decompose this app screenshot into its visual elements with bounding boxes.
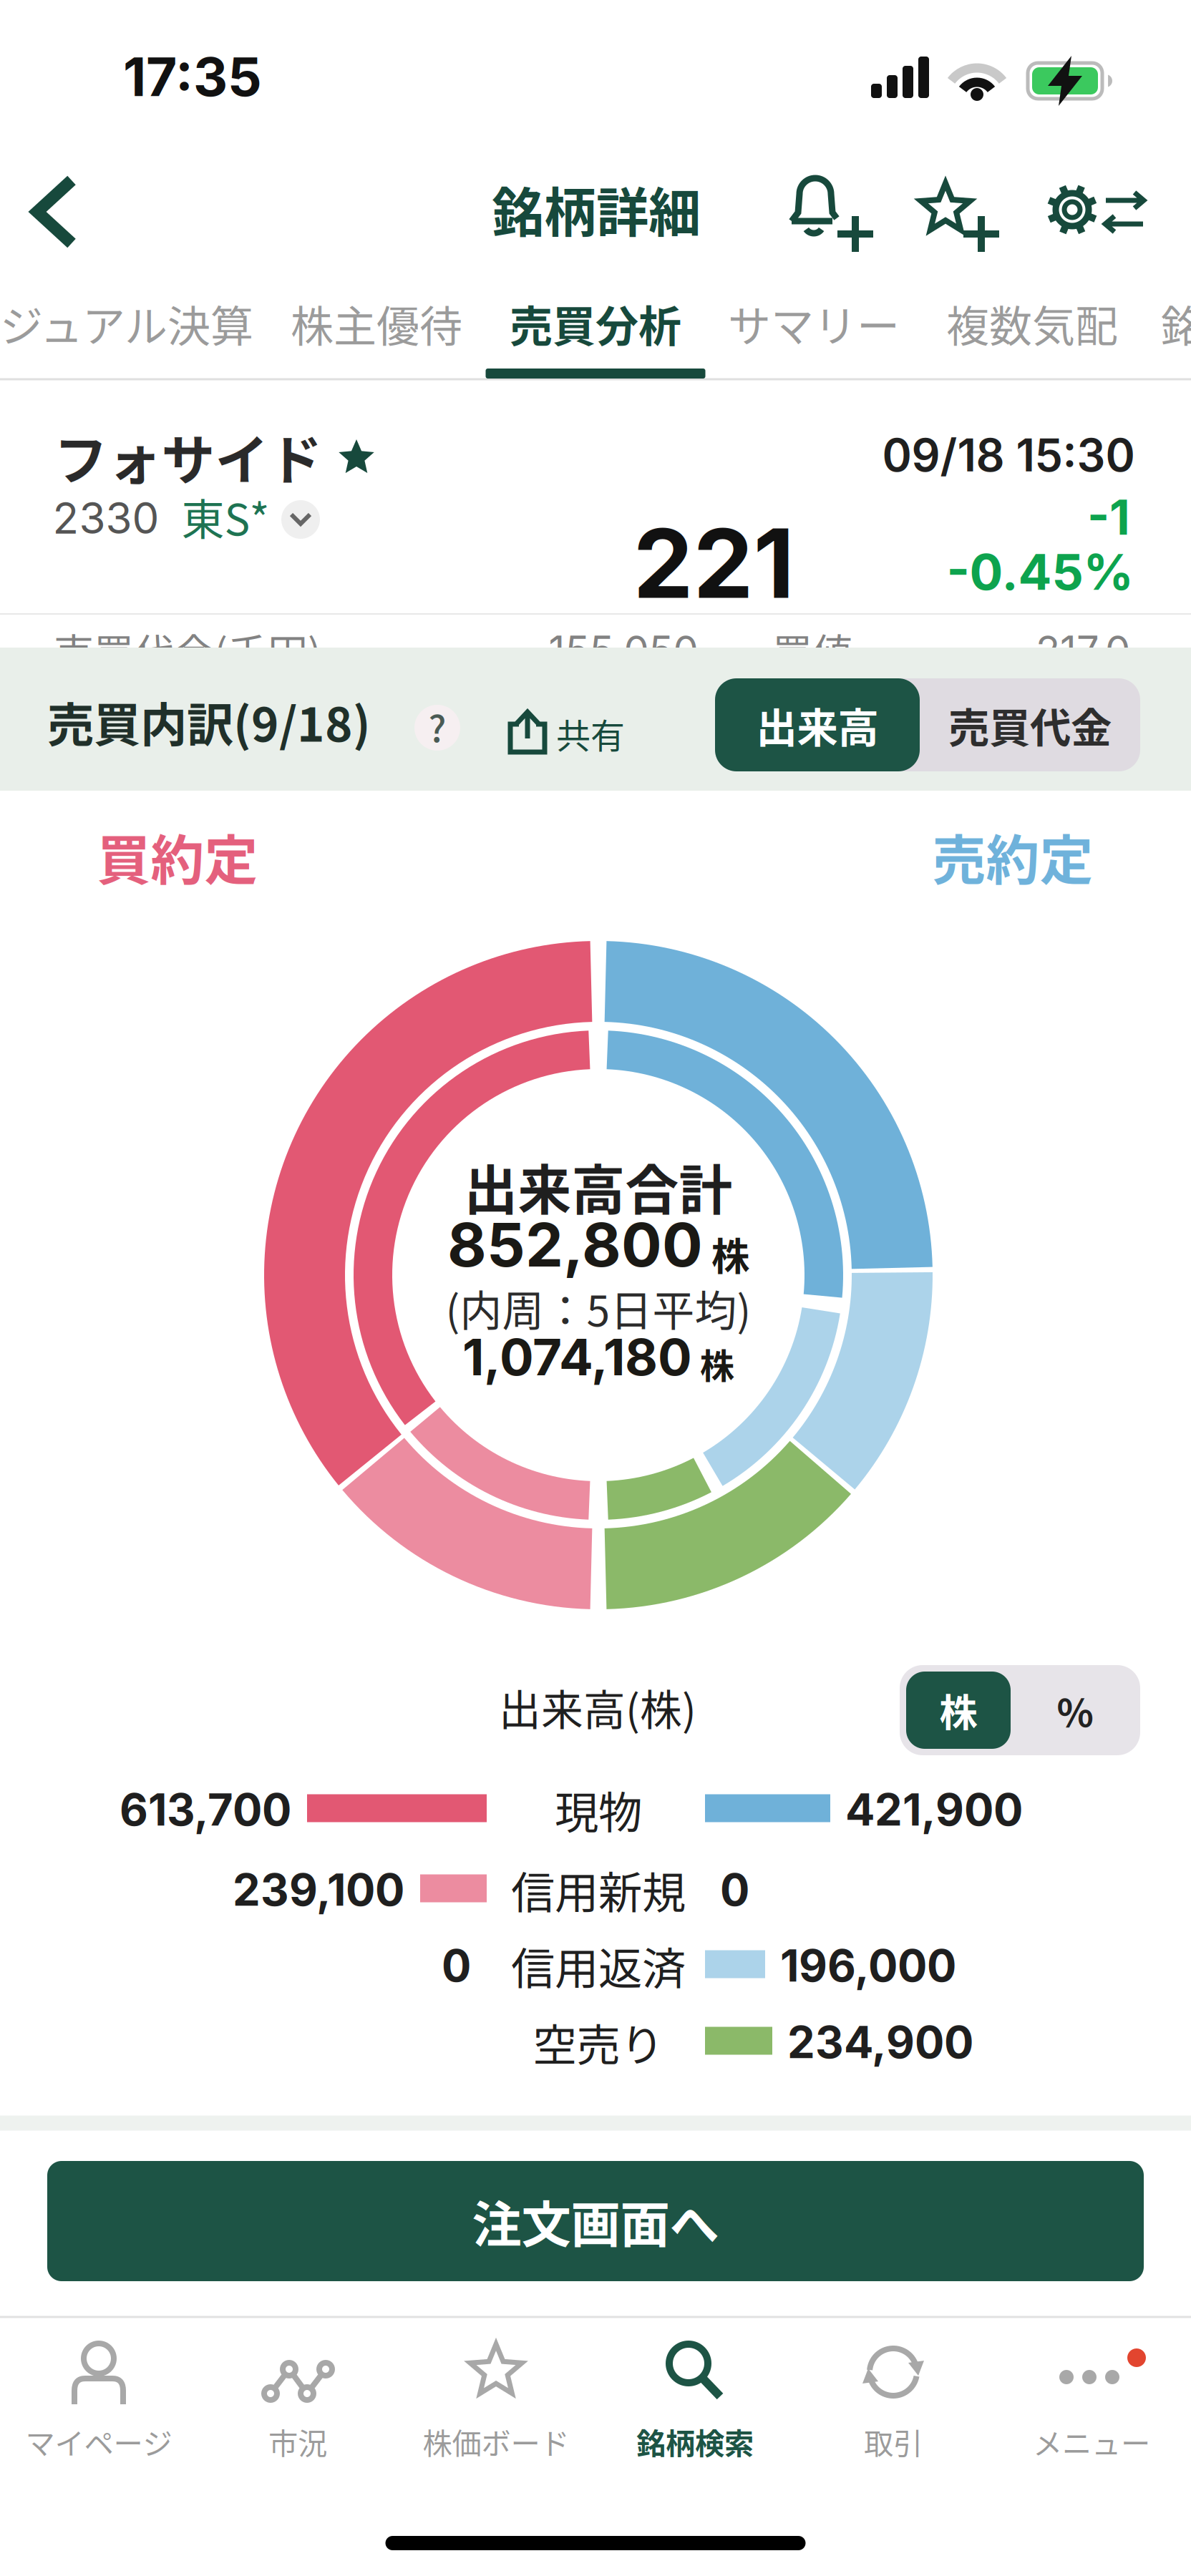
staticText: 221	[633, 505, 794, 621]
staticText: 0	[720, 1863, 749, 1916]
staticText: 売買代金(千円)	[54, 621, 321, 679]
staticText: 売買代金	[948, 695, 1112, 755]
staticText: 株価ボード	[423, 2420, 569, 2463]
staticText: 2330	[53, 492, 159, 544]
staticText: 155,050	[549, 626, 698, 675]
staticText: 銘柄詳細	[492, 171, 701, 247]
staticText: 銘柄検索	[636, 2420, 754, 2463]
staticText: 09/18 15:30	[882, 428, 1135, 482]
button[interactable]: 共有	[483, 679, 648, 758]
button[interactable]: 売買代金	[920, 678, 1140, 771]
button[interactable]: Back	[11, 169, 97, 255]
button[interactable]: 設定	[1034, 161, 1156, 261]
button[interactable]: 株価ボード	[402, 2326, 590, 2476]
staticText: ?	[428, 700, 446, 753]
staticText: 取引	[864, 2420, 923, 2463]
staticText: 信用返済	[511, 1934, 686, 1997]
button[interactable]: 銘柄ニュース	[1161, 292, 1191, 355]
staticText: 196,000	[780, 1939, 956, 1992]
staticText: 出来高合計	[464, 1148, 733, 1225]
staticText: 市況	[268, 2420, 327, 2463]
staticText: 現物	[555, 1778, 642, 1841]
staticText: メニュー	[1033, 2420, 1150, 2463]
button[interactable]: マイページ	[5, 2326, 193, 2476]
button[interactable]: 銘柄検索	[601, 2326, 789, 2476]
button[interactable]: サマリー	[728, 292, 900, 355]
button[interactable]: %	[1018, 1672, 1132, 1749]
button[interactable]: アラート追加	[775, 161, 883, 261]
staticText: フォサイド	[54, 418, 322, 495]
staticText: (内周：5日平均)	[446, 1278, 751, 1338]
staticText: サマリー	[728, 292, 900, 355]
staticText: 1,074,180 株	[462, 1327, 734, 1388]
button[interactable]: 市場選択	[281, 499, 321, 540]
button[interactable]: 出来高	[715, 678, 920, 771]
button[interactable]: メニュー	[998, 2326, 1185, 2476]
button[interactable]: ヘルプ	[414, 705, 460, 751]
button[interactable]: 株	[906, 1672, 1011, 1749]
staticText: 売約定	[932, 818, 1093, 895]
staticText: 613,700	[120, 1783, 291, 1836]
button[interactable]: 注文画面へ	[47, 2161, 1144, 2281]
button[interactable]: ビジュアル決算	[0, 292, 253, 355]
staticText: 234,900	[787, 2016, 973, 2069]
staticText: 株	[939, 1683, 977, 1738]
staticText: 17:35	[123, 44, 262, 109]
staticText: 852,800 株	[447, 1209, 749, 1281]
staticText: 0	[442, 1939, 471, 1992]
staticText: 421,900	[845, 1783, 1023, 1836]
staticText: %	[1057, 1683, 1093, 1738]
staticText: マイページ	[25, 2420, 172, 2463]
staticText: 買値	[772, 621, 852, 679]
staticText: 売買内訳(9/18)	[47, 687, 371, 755]
staticText: 出来高	[756, 695, 879, 755]
staticText: 239,100	[233, 1863, 404, 1916]
staticText: 売買分析	[510, 292, 681, 355]
staticText: -0.45%	[947, 542, 1133, 602]
staticText: 複数気配	[946, 292, 1118, 355]
staticText: -1	[1087, 489, 1130, 546]
staticText: 株主優待	[291, 292, 462, 355]
staticText: 東S*	[181, 486, 269, 548]
staticText: 217.0	[1036, 626, 1130, 675]
button[interactable]: 取引	[799, 2326, 987, 2476]
staticText: ビジュアル決算	[0, 292, 253, 355]
button[interactable]: 売買分析	[510, 292, 681, 355]
staticText: 注文画面へ	[472, 2185, 719, 2257]
button[interactable]: 市況	[204, 2326, 392, 2476]
staticText: 買約定	[97, 818, 258, 895]
staticText: 銘柄ニュース	[1161, 292, 1191, 355]
staticText: 空売り	[533, 2010, 664, 2074]
button[interactable]: お気に入り追加	[900, 161, 1008, 261]
staticText: 共有	[556, 709, 625, 758]
button[interactable]: 株主優待	[291, 292, 462, 355]
staticText: 信用新規	[511, 1858, 686, 1922]
staticText: 出来高(株)	[499, 1677, 696, 1738]
button[interactable]: 複数気配	[946, 292, 1118, 355]
